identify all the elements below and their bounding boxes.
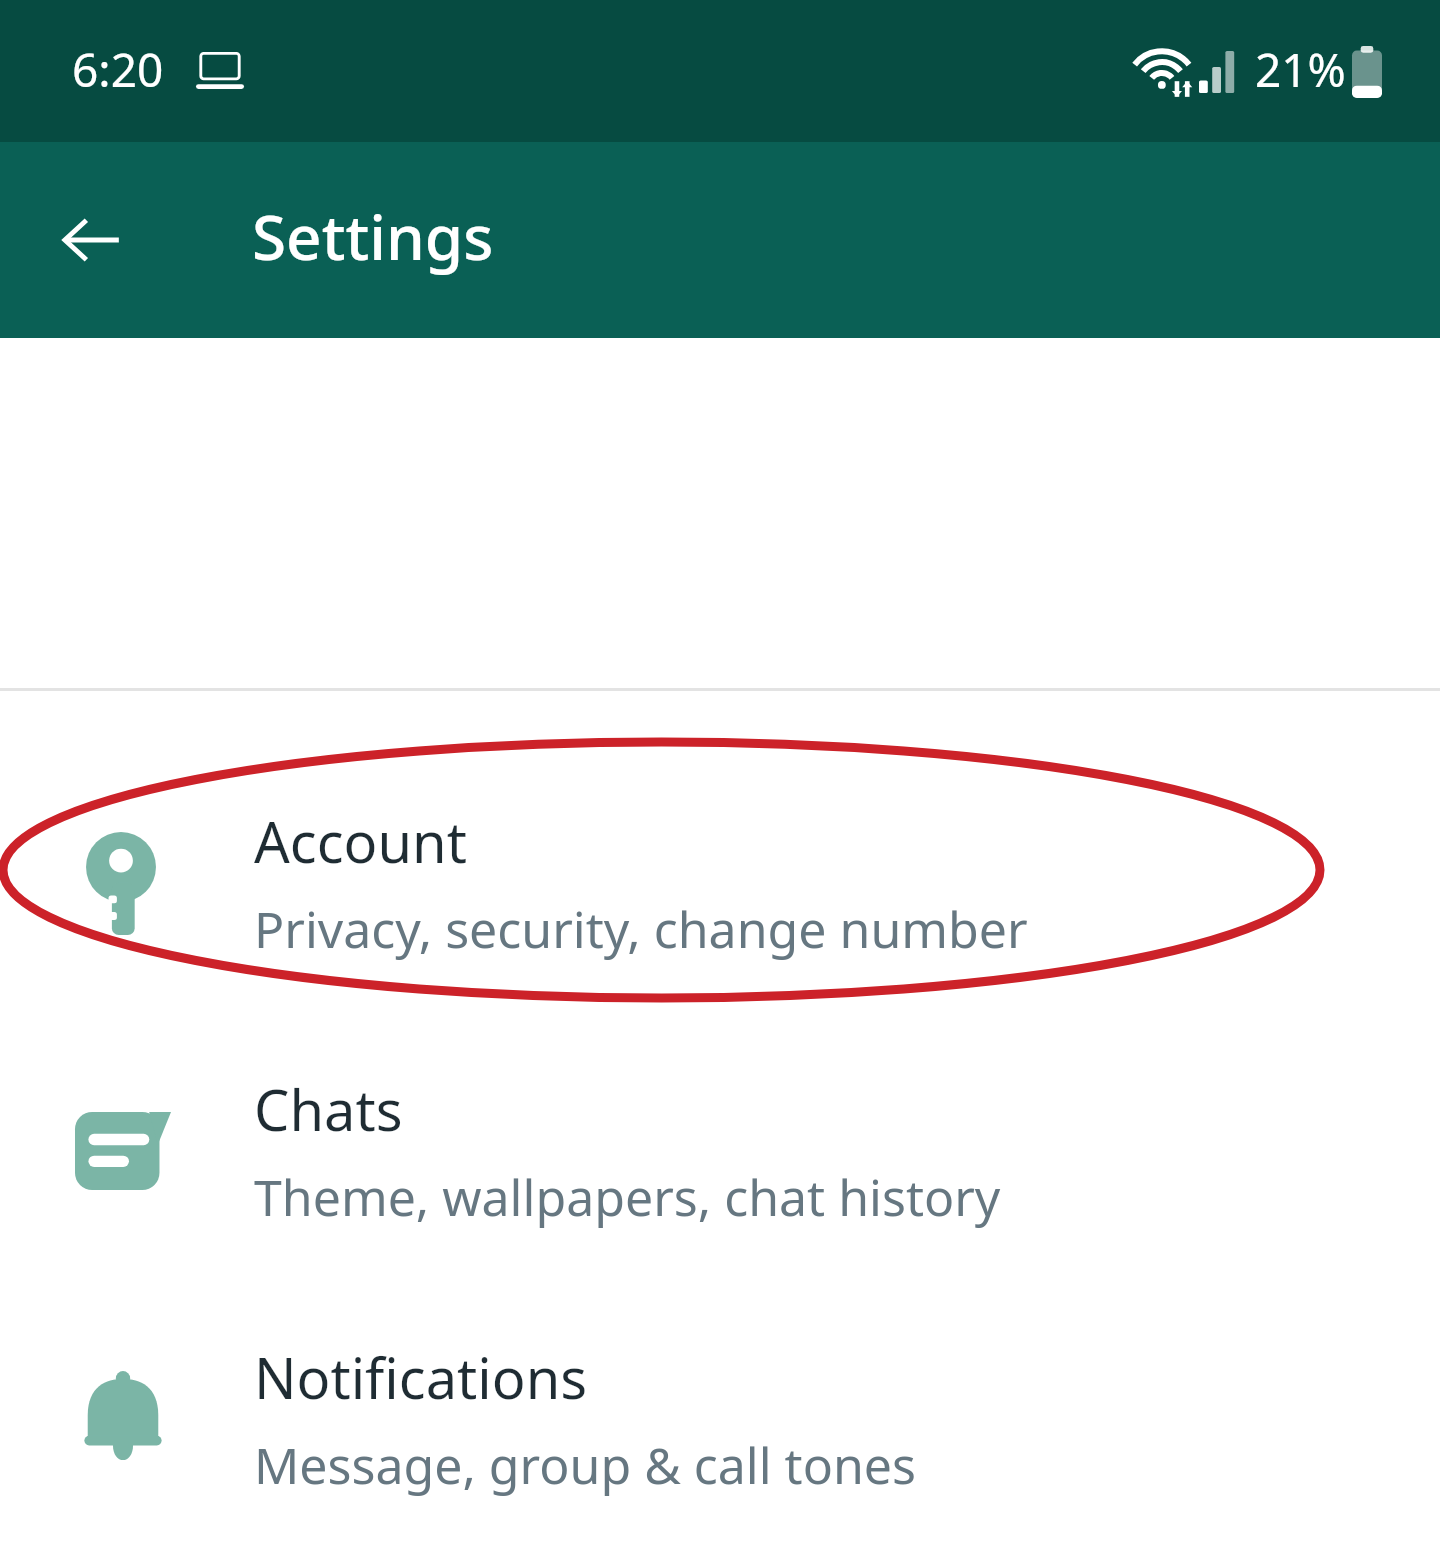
staticText: 6:20: [72, 38, 164, 101]
staticText: Message, group & call tones: [254, 1431, 916, 1499]
staticText: Account: [254, 803, 467, 879]
button[interactable]: Chats: [0, 1017, 1440, 1285]
staticText: Notifications: [254, 1339, 588, 1415]
staticText: Privacy, security, change number: [254, 895, 1028, 963]
button[interactable]: Notifications: [0, 1285, 1440, 1553]
staticText: Theme, wallpapers, chat history: [254, 1163, 1001, 1231]
button[interactable]: Back: [36, 185, 146, 295]
button[interactable]: Account: [0, 749, 1440, 1017]
staticText: Chats: [254, 1071, 403, 1147]
staticText: Settings: [252, 194, 494, 278]
staticText: 21%: [1255, 38, 1346, 101]
